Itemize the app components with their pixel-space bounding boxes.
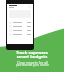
staticText: Clear reports for all purchases you make (16, 60, 49, 67)
staticText: Track expenses smart budgets (16, 50, 48, 59)
